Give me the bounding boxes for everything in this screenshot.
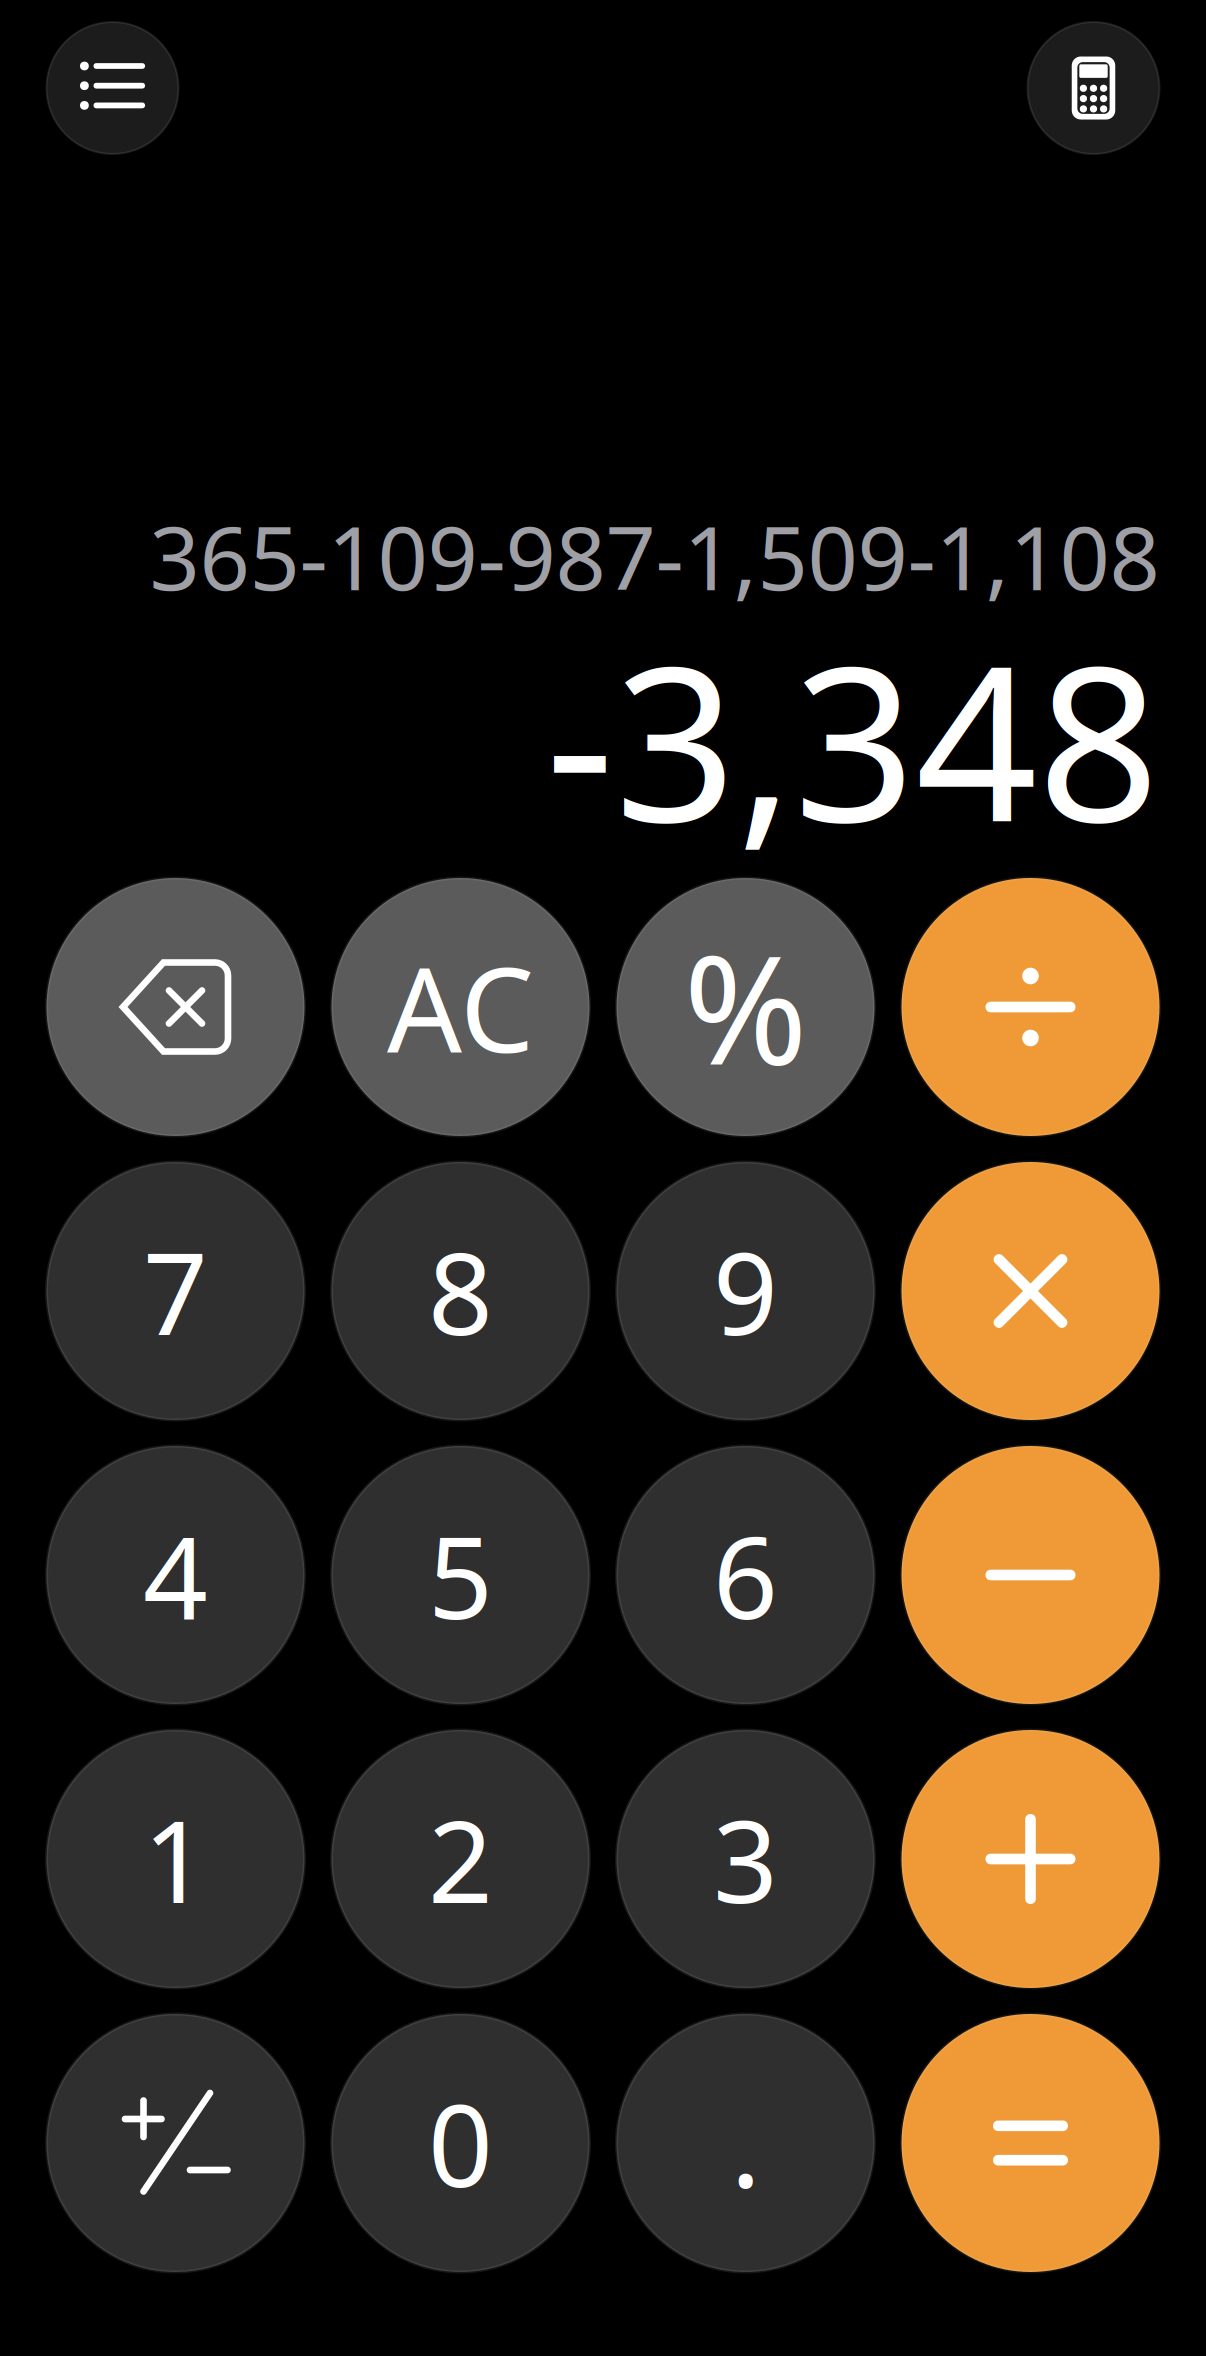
button[interactable]: . (616, 2014, 874, 2272)
button[interactable]: 6 (616, 1446, 874, 1704)
button[interactable]: 0 (331, 2014, 589, 2272)
button[interactable]: 2 (331, 1730, 589, 1988)
staticText: % (683, 908, 807, 1106)
button[interactable]: Divide (901, 878, 1159, 1136)
button[interactable]: % (616, 878, 874, 1136)
button[interactable]: Delete (46, 878, 304, 1136)
button[interactable]: 5 (331, 1446, 589, 1704)
staticText: 3 (713, 1784, 778, 1934)
button[interactable]: 1 (46, 1730, 304, 1988)
button[interactable]: 9 (616, 1162, 874, 1420)
staticText: 5 (428, 1500, 493, 1650)
staticText: AC (387, 929, 534, 1085)
staticText: 2 (428, 1784, 493, 1934)
staticText: . (730, 2068, 760, 2218)
button[interactable]: Plus (901, 1730, 1159, 1988)
staticText: 4 (143, 1500, 208, 1650)
button[interactable]: 3 (616, 1730, 874, 1988)
staticText: 9 (713, 1216, 778, 1366)
staticText: 6 (713, 1500, 778, 1650)
staticText: 0 (428, 2068, 493, 2218)
button[interactable]: 7 (46, 1162, 304, 1420)
staticText: 8 (428, 1216, 493, 1366)
button[interactable]: Multiply (901, 1162, 1159, 1420)
button[interactable]: Plus minus (46, 2014, 304, 2272)
button[interactable]: Calculator mode (1027, 22, 1159, 154)
button[interactable]: AC (331, 878, 589, 1136)
staticText: 365-109-987-1,509-1,108 (149, 498, 1159, 614)
button[interactable]: Minus (901, 1446, 1159, 1704)
staticText: 1 (143, 1784, 208, 1934)
button[interactable]: History (46, 22, 178, 154)
staticText: 7 (143, 1216, 208, 1366)
button[interactable]: 8 (331, 1162, 589, 1420)
button[interactable]: 4 (46, 1446, 304, 1704)
staticText: -3,348 (545, 597, 1159, 881)
button[interactable]: Equals (901, 2014, 1159, 2272)
